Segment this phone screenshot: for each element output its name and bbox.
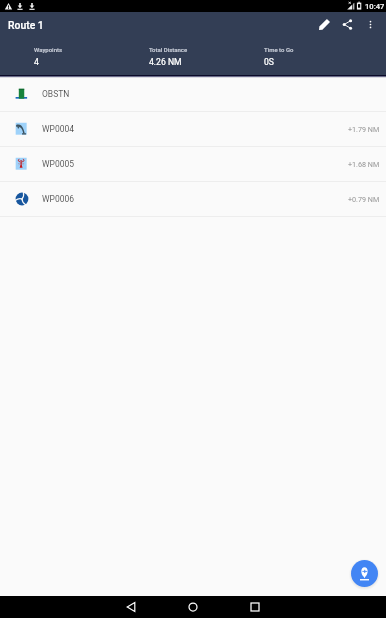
staticText: 10:47 (365, 2, 385, 11)
staticText: WP0004 (42, 124, 75, 134)
button[interactable]: WP0006 (0, 182, 386, 217)
button[interactable]: More options (359, 13, 382, 36)
staticText: +0.79 NM (348, 195, 380, 203)
button[interactable]: Home (183, 597, 203, 617)
staticText: +1.79 NM (348, 125, 380, 133)
button[interactable]: WP0004 (0, 112, 386, 147)
staticText: OBSTN (42, 89, 70, 99)
staticText: Time to Go (264, 46, 294, 53)
staticText: Route 1 (8, 19, 44, 31)
button[interactable]: Back (121, 597, 141, 617)
button[interactable]: Add waypoint (351, 560, 378, 587)
button[interactable]: WP0005 (0, 147, 386, 182)
staticText: 0S (264, 57, 274, 67)
staticText: Total Distance (149, 46, 188, 53)
staticText: +1.68 NM (348, 160, 380, 168)
staticText: Waypoints (34, 46, 63, 53)
staticText: 4 (34, 57, 39, 67)
staticText: WP0006 (42, 194, 75, 204)
button[interactable]: Edit (313, 13, 336, 36)
button[interactable]: Share (336, 13, 359, 36)
staticText: WP0005 (42, 159, 75, 169)
staticText: 4.26 NM (149, 57, 182, 67)
button[interactable]: Recents (245, 597, 265, 617)
button[interactable]: OBSTN (0, 77, 386, 112)
